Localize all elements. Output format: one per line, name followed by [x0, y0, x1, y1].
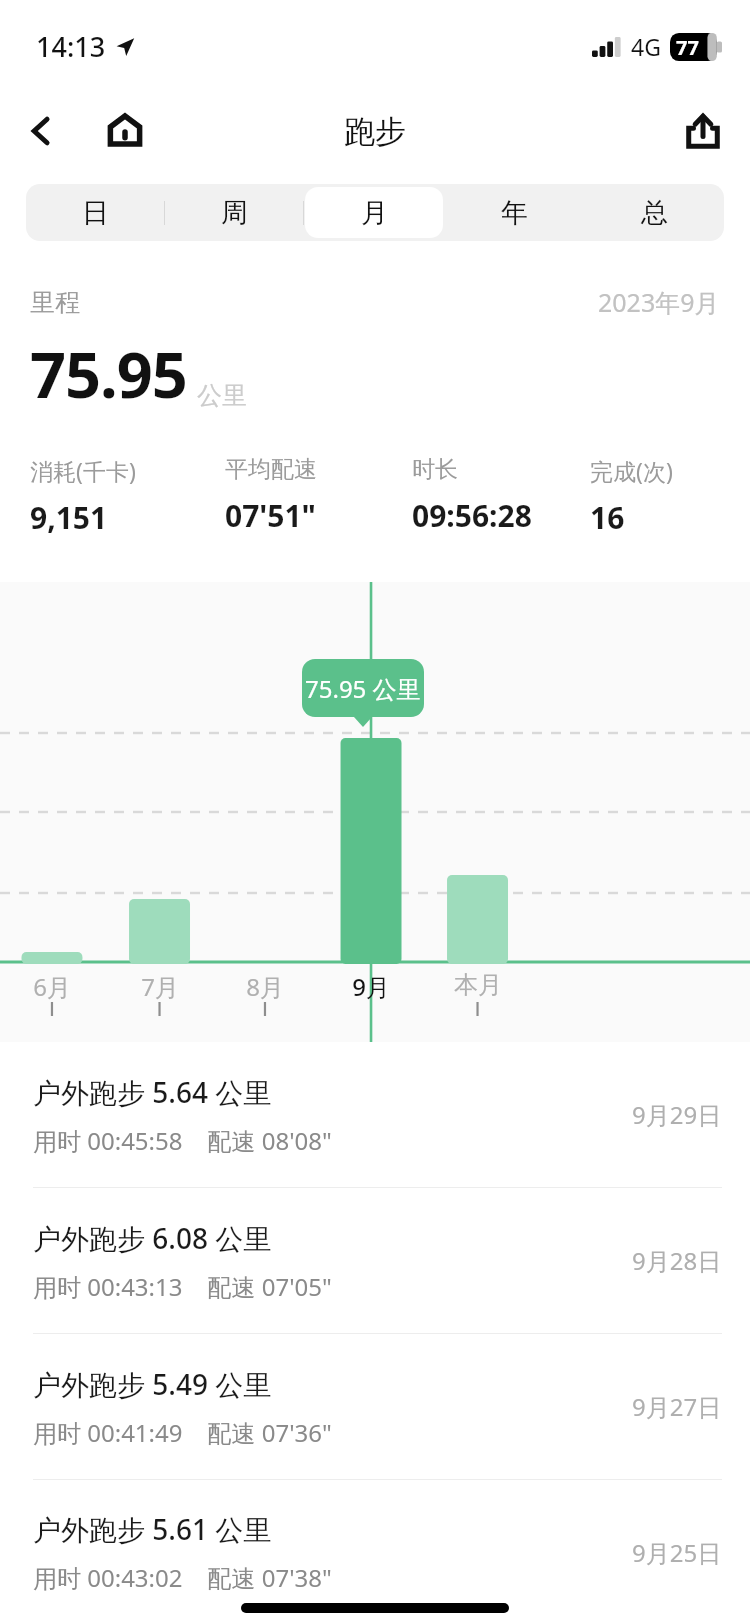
staticText: 09:56:28: [412, 495, 532, 536]
staticText: 户外跑步 5.61 公里: [33, 1510, 272, 1548]
staticText: 9月28日: [632, 1244, 722, 1277]
staticText: 9月27日: [632, 1390, 722, 1423]
staticText: 6月: [33, 970, 71, 1003]
button[interactable]: 户外跑步 6.08 公里: [0, 1188, 750, 1333]
staticText: 07'51": [225, 495, 316, 536]
staticText: 8月: [246, 970, 284, 1003]
staticText: 消耗(千卡): [30, 455, 136, 486]
button[interactable]: 户外跑步 5.61 公里: [0, 1480, 750, 1624]
staticText: 9月: [352, 970, 390, 1003]
staticText: 75.95 公里: [305, 672, 421, 705]
staticText: 平均配速: [225, 455, 317, 484]
staticText: 9,151: [30, 497, 108, 538]
staticText: 用时 00:41:49 配速 07'36": [33, 1416, 332, 1449]
staticText: 用时 00:45:58 配速 08'08": [33, 1124, 332, 1157]
button[interactable]: 总: [584, 184, 724, 241]
staticText: 2023年9月: [598, 285, 720, 319]
button[interactable]: Share: [674, 102, 732, 160]
staticText: 7月: [141, 970, 179, 1003]
staticText: 9月25日: [632, 1536, 722, 1569]
staticText: 户外跑步 5.64 公里: [33, 1073, 272, 1111]
staticText: 用时 00:43:13 配速 07'05": [33, 1270, 332, 1303]
staticText: 户外跑步 5.49 公里: [33, 1365, 272, 1403]
button[interactable]: 月: [304, 184, 444, 241]
staticText: 9月29日: [632, 1098, 722, 1131]
staticText: 公里: [197, 380, 247, 411]
staticText: 跑步: [344, 112, 406, 151]
staticText: 时长: [412, 455, 458, 484]
staticText: 日: [82, 196, 109, 230]
staticText: 年: [501, 196, 528, 230]
button[interactable]: Home: [96, 102, 154, 160]
staticText: 4G: [631, 31, 661, 62]
staticText: 用时 00:43:02 配速 07'38": [33, 1561, 332, 1594]
staticText: 里程: [30, 287, 80, 318]
staticText: 77: [676, 34, 699, 61]
button[interactable]: 户外跑步 5.49 公里: [0, 1334, 750, 1479]
button[interactable]: 日: [26, 184, 165, 241]
button[interactable]: 年: [444, 184, 584, 241]
staticText: 总: [641, 196, 668, 230]
staticText: 周: [221, 196, 248, 230]
staticText: 75.95: [30, 331, 187, 417]
staticText: 月: [361, 196, 388, 230]
staticText: 本月: [454, 970, 502, 1000]
staticText: 16: [590, 497, 625, 538]
staticText: 完成(次): [590, 455, 673, 486]
button[interactable]: Back: [14, 103, 70, 159]
staticText: 14:13: [36, 28, 106, 65]
staticText: 户外跑步 6.08 公里: [33, 1219, 272, 1257]
button[interactable]: 周: [165, 184, 304, 241]
button[interactable]: 户外跑步 5.64 公里: [0, 1042, 750, 1187]
